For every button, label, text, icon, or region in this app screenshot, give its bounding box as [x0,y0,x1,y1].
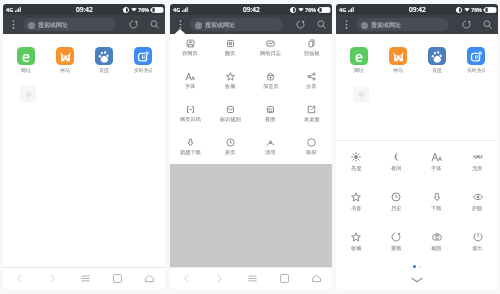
button[interactable]: 实时热讯 [134,47,152,73]
button[interactable]: 搜索或网址 [190,18,283,31]
button[interactable]: 清理 [250,133,291,164]
staticText: 重载 [391,245,402,252]
button[interactable]: 重载 [376,221,416,261]
staticText: 发桌面 [304,116,320,123]
button[interactable]: 标识规则 [210,100,250,133]
button[interactable]: 搜索或网址 [356,18,449,31]
button[interactable]: More options [170,15,190,34]
button[interactable]: 网络日志 [250,34,291,67]
button[interactable]: Refresh [456,15,476,34]
button[interactable]: 拼页 [210,133,250,164]
staticText: 收藏 [225,83,236,90]
button[interactable]: Add shortcut [20,86,36,102]
button[interactable]: 字体 [416,141,457,181]
staticText: 分享 [306,83,317,90]
button[interactable]: 书签 [336,181,376,221]
staticText: 4G [173,6,181,13]
staticText: 清理 [265,149,276,156]
staticText: 搜索或网址 [205,21,235,29]
button[interactable]: 历史 [376,181,416,221]
button[interactable]: Search [143,15,165,34]
button[interactable]: Home [133,268,165,289]
button[interactable]: Back [170,268,203,289]
button[interactable]: 加首页 [250,67,291,100]
staticText: 09:42 [409,5,426,14]
staticText: 无痕 [472,165,483,172]
button[interactable]: Search [476,15,498,34]
button[interactable]: 神马 [389,47,407,73]
button[interactable]: 护眼 [457,181,498,221]
staticText: 神马 [60,67,70,73]
button[interactable]: 字体 [170,67,210,100]
button[interactable]: Refresh [290,15,310,34]
staticText: 标识规则 [220,116,241,123]
button[interactable]: 实时热讯 [467,47,485,73]
button[interactable]: 亮度 [336,141,376,181]
button[interactable]: Forward [203,268,236,289]
button[interactable]: 夜间 [376,141,416,181]
button[interactable]: Refresh [123,15,143,34]
button[interactable]: Add shortcut [353,86,369,102]
staticText: 4G [339,6,347,13]
button[interactable]: 收藏 [336,221,376,261]
button[interactable]: e [350,47,368,73]
button[interactable]: 搜索或网址 [23,18,116,31]
staticText: 实时热讯 [467,67,485,73]
staticText: 字体 [431,165,442,172]
button[interactable]: 神马 [56,47,74,73]
staticText: 收藏 [351,245,362,252]
button[interactable]: 看图 [250,100,291,133]
button[interactable]: 收藏 [210,67,250,100]
staticText: 神马 [393,67,403,73]
button[interactable]: 下载 [416,181,457,221]
button[interactable]: 百度 [95,47,113,73]
button[interactable]: 新建下载 [170,133,210,164]
button[interactable]: 网页识码 [170,100,210,133]
button[interactable]: 存网页 [170,34,210,67]
staticText: 搜索或网址 [371,21,401,29]
staticText: 09:42 [76,5,93,14]
button[interactable]: 剪贴板 [291,34,332,67]
button[interactable]: 分享 [291,67,332,100]
staticText: 嗅探 [306,149,317,156]
staticText: 剪贴板 [304,50,320,57]
staticText: 截图 [431,245,442,252]
staticText: 百度 [432,67,442,73]
staticText: 百度 [99,67,109,73]
button[interactable]: Menu [236,268,268,289]
button[interactable]: 翻页 [210,34,250,67]
button[interactable]: Home [300,268,332,289]
button[interactable]: Forward [36,268,69,289]
button[interactable]: Menu [69,268,101,289]
button[interactable]: Collapse [336,274,498,286]
button[interactable]: 嗅探 [291,133,332,164]
staticText: 护眼 [472,205,483,212]
staticText: 字体 [185,83,196,90]
button[interactable]: Search [310,15,332,34]
button[interactable]: 无痕 [457,141,498,181]
staticText: 76% [138,6,149,13]
button[interactable]: 退出 [457,221,498,261]
staticText: 历史 [391,205,402,212]
staticText: 实时热讯 [134,67,152,73]
button[interactable]: Tabs [101,268,133,289]
button[interactable]: e [17,47,35,73]
staticText: e [355,47,363,65]
button[interactable]: 截图 [416,221,457,261]
button[interactable]: More options [336,15,356,34]
staticText: 存网页 [182,50,198,57]
button[interactable]: 发桌面 [291,100,332,133]
staticText: 网页识码 [180,116,201,123]
staticText: 76% [471,6,482,13]
staticText: 亮度 [351,165,362,172]
button[interactable]: More options [3,15,23,34]
button[interactable]: Tabs [268,268,300,289]
button[interactable]: 百度 [428,47,446,73]
staticText: 搜索或网址 [38,21,68,29]
staticText: e [22,47,30,65]
button[interactable]: Back [3,268,36,289]
staticText: 网址 [21,67,31,73]
staticText: 09:42 [243,5,260,14]
staticText: 新建下载 [180,149,201,156]
staticText: 看图 [265,116,276,123]
